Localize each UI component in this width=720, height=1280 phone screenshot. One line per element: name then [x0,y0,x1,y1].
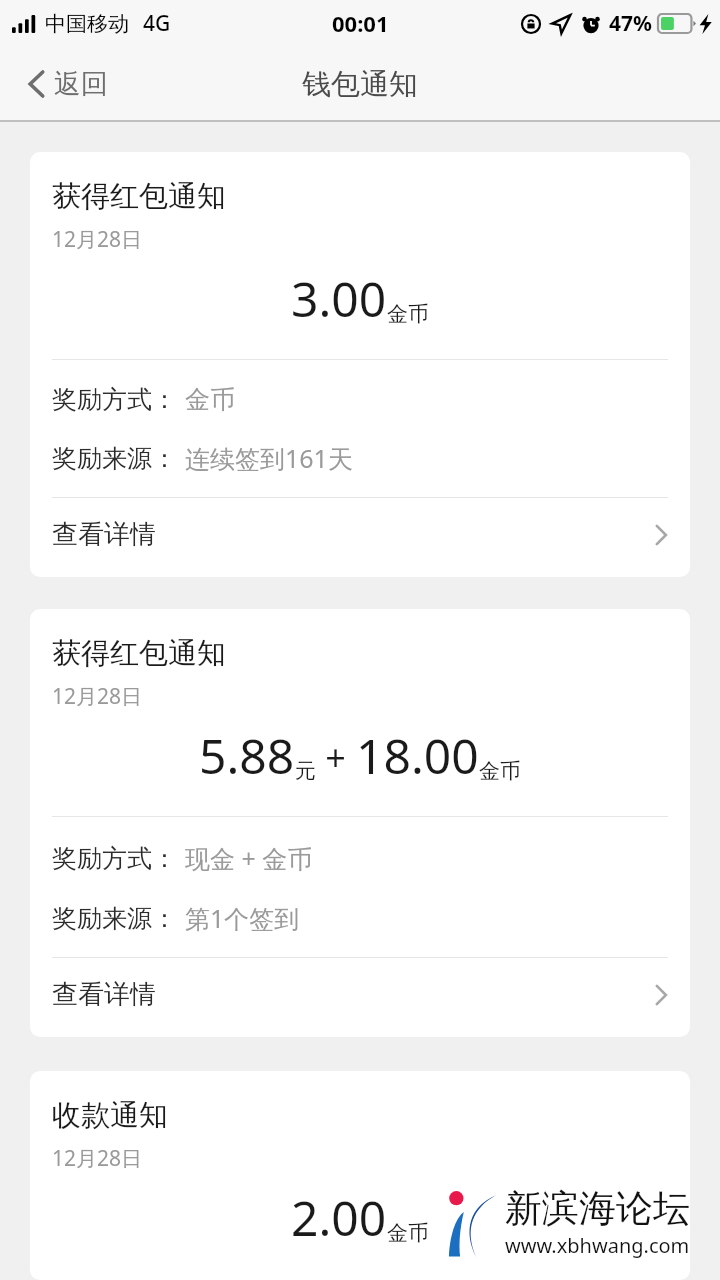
staticText: 12月28日 [52,1144,143,1173]
staticText: 2.00 [291,1185,387,1250]
staticText: 4G [143,9,171,38]
button[interactable]: 收款通知 [30,1071,690,1280]
staticText: 查看详情 [52,978,156,1011]
staticText: 12月28日 [52,225,143,254]
staticText: 获得红包通知 [52,635,226,672]
button[interactable]: 查看详情 [30,958,690,1031]
staticText: 47% [609,9,652,38]
staticText: 金币 [387,1220,429,1246]
staticText: 3.00 [291,266,387,331]
staticText: 金币 [479,758,521,784]
staticText: 连续签到161天 [185,441,353,475]
button[interactable]: 获得红包通知 [30,152,690,577]
staticText: 新滨海论坛 [505,1185,690,1232]
staticText: 金币 [387,301,429,327]
button[interactable]: 返回 [18,61,118,107]
staticText: 收款通知 [52,1097,168,1134]
staticText: 返回 [54,67,108,101]
staticText: 金币 [185,384,235,415]
staticText: 18.00 [356,723,479,788]
staticText: 元 [295,758,316,784]
staticText: 奖励来源： [52,903,177,934]
staticText: 5.88 [199,723,295,788]
button[interactable]: 获得红包通知 [30,609,690,1037]
staticText: 00:01 [332,8,389,38]
staticText: 奖励方式： [52,843,177,874]
staticText: 查看详情 [52,518,156,551]
button[interactable]: 查看详情 [30,498,690,571]
staticText: 12月28日 [52,682,143,711]
staticText: 钱包通知 [302,66,418,103]
staticText: 获得红包通知 [52,178,226,215]
staticText: 奖励方式： [52,384,177,415]
staticText: 现金 + 金币 [185,841,313,875]
staticText: 奖励来源： [52,443,177,474]
staticText: 第1个签到 [185,901,300,935]
staticText: + [316,733,356,782]
staticText: www.xbhwang.com [505,1232,690,1259]
staticText: 中国移动 [45,11,129,37]
